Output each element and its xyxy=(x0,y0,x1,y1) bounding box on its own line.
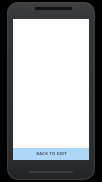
button[interactable]: Back to exit xyxy=(13,148,89,160)
staticText: BACK TO EXIT xyxy=(36,151,67,157)
